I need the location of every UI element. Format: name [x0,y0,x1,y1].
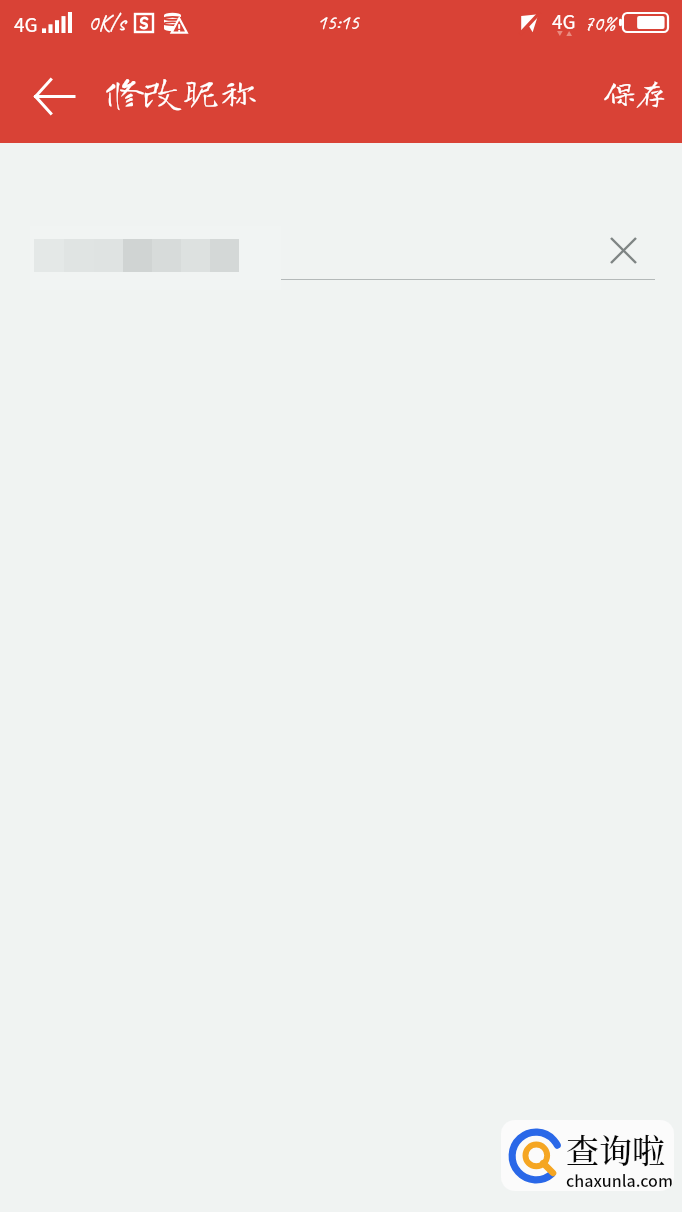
staticText: 查询啦 [566,1125,665,1172]
staticText: 保存 [604,77,666,108]
staticText: 4G [14,10,38,38]
staticText: 15:15 [317,9,359,35]
staticText: chaxunla.com [566,1168,674,1191]
button[interactable]: Back [18,60,90,132]
staticText: 0K/s [88,8,126,37]
staticText: 70% [584,10,616,36]
button[interactable]: Clear text [597,224,649,276]
button[interactable]: 保存 [586,66,682,125]
staticText: 修改昵称 [106,73,259,111]
staticText: 4G [552,7,576,35]
button[interactable]: Nickname input [34,222,655,280]
